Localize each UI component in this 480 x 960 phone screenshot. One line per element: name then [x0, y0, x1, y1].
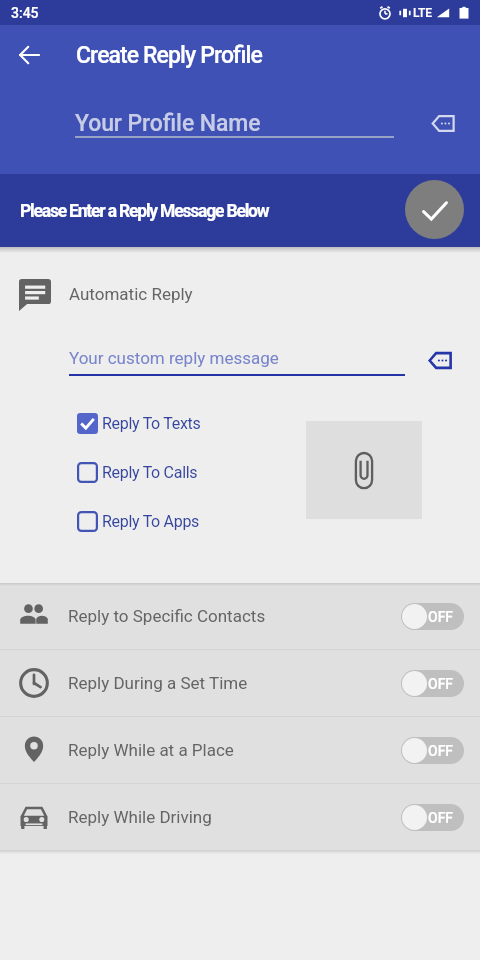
- button[interactable]: Back: [5, 31, 53, 79]
- staticText: Please Enter a Reply Message Below: [20, 201, 269, 222]
- button[interactable]: Reply To Apps: [77, 511, 200, 532]
- button[interactable]: Toggle Reply While Driving: [401, 804, 464, 831]
- button[interactable]: Reply While at a Place: [0, 717, 480, 783]
- button[interactable]: Reply While Driving: [0, 784, 480, 850]
- button[interactable]: Clear reply message: [420, 340, 460, 380]
- button[interactable]: Reply To Calls: [77, 462, 198, 483]
- staticText: Reply While at a Place: [68, 740, 234, 760]
- button[interactable]: Reply To Texts: [77, 413, 201, 434]
- staticText: Your Profile Name: [75, 110, 261, 137]
- button[interactable]: Clear profile name: [423, 103, 463, 143]
- staticText: OFF: [428, 743, 454, 759]
- button[interactable]: Reply During a Set Time: [0, 650, 480, 716]
- staticText: Reply To Calls: [102, 463, 198, 482]
- staticText: Your custom reply message: [69, 348, 279, 368]
- staticText: 3:45: [11, 5, 39, 21]
- button[interactable]: Add attachment: [306, 421, 422, 519]
- staticText: OFF: [428, 810, 454, 826]
- button[interactable]: Toggle Reply While at a Place: [401, 737, 464, 764]
- button[interactable]: Save reply profile: [405, 180, 464, 239]
- staticText: Automatic Reply: [69, 284, 193, 304]
- staticText: Reply During a Set Time: [68, 673, 248, 693]
- staticText: Reply To Apps: [102, 512, 200, 531]
- button[interactable]: Reply to Specific Contacts: [0, 583, 480, 649]
- staticText: Reply to Specific Contacts: [68, 606, 266, 626]
- staticText: Reply To Texts: [102, 414, 201, 433]
- staticText: OFF: [428, 676, 454, 692]
- button[interactable]: Toggle Reply to Specific Contacts: [401, 603, 464, 630]
- staticText: OFF: [428, 609, 454, 625]
- staticText: Create Reply Profile: [76, 42, 263, 69]
- staticText: LTE: [413, 6, 433, 20]
- staticText: Reply While Driving: [68, 807, 212, 827]
- button[interactable]: Toggle Reply During a Set Time: [401, 670, 464, 697]
